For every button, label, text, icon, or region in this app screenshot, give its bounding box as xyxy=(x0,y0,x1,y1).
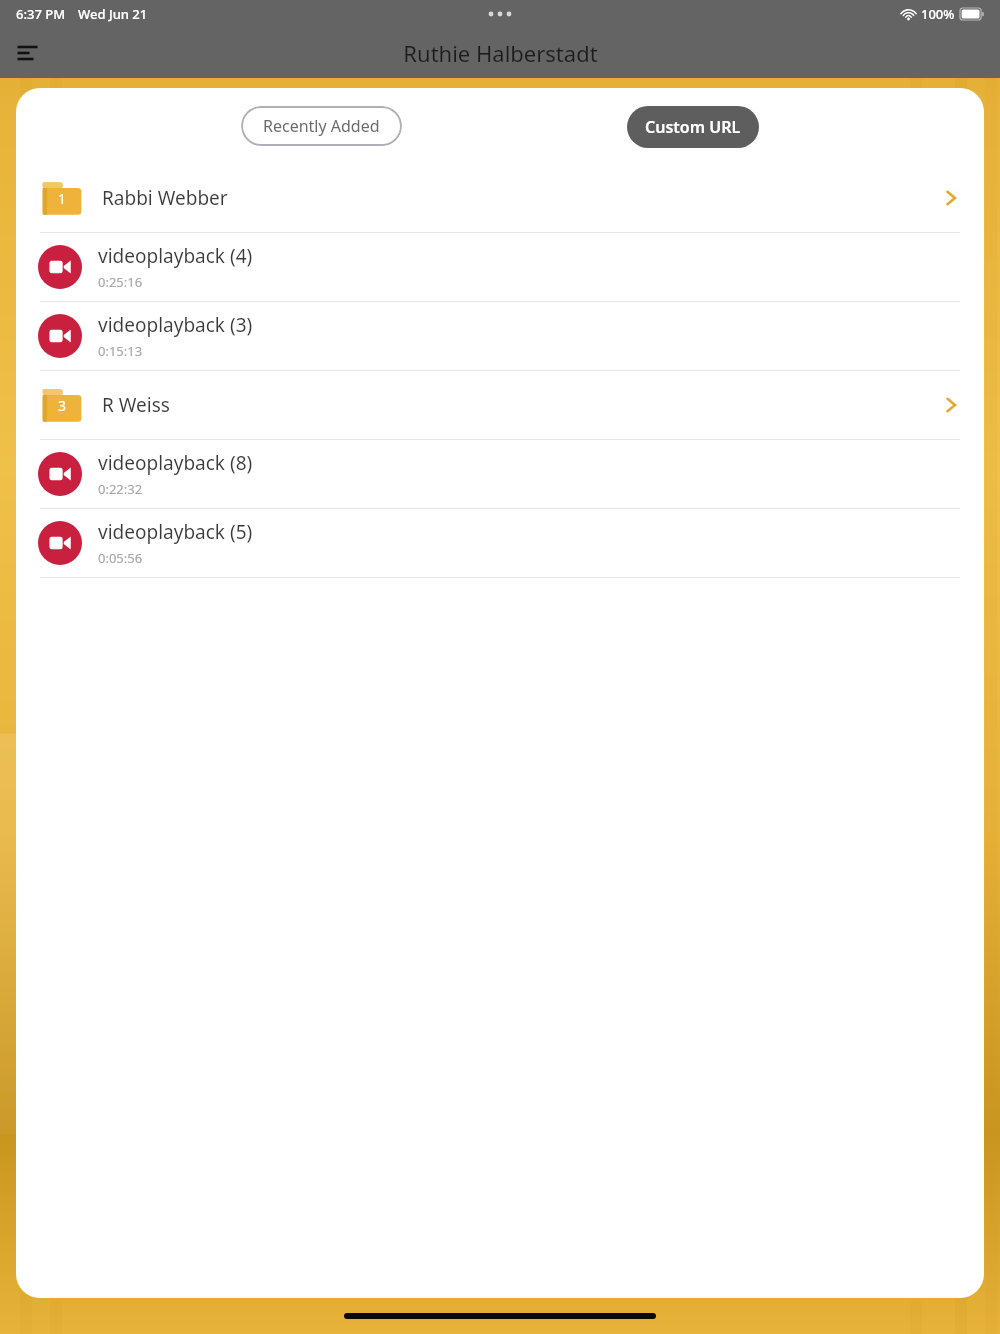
staticText: Custom URL xyxy=(645,116,741,138)
staticText: videoplayback (4) xyxy=(98,243,253,269)
staticText: videoplayback (8) xyxy=(98,450,253,476)
button[interactable]: videoplayback (8) xyxy=(16,440,984,508)
staticText: 1 xyxy=(58,189,67,208)
staticText: 0:22:32 xyxy=(98,480,143,498)
staticText: videoplayback (5) xyxy=(98,519,253,545)
staticText: Ruthie Halberstadt xyxy=(403,38,598,68)
button[interactable]: Recently Added xyxy=(241,106,402,146)
button[interactable]: 3 xyxy=(16,371,984,439)
staticText: 100% xyxy=(921,5,955,23)
button[interactable]: videoplayback (3) xyxy=(16,302,984,370)
staticText: 0:05:56 xyxy=(98,549,143,567)
staticText: Wed Jun 21 xyxy=(78,5,148,23)
button[interactable]: 1 xyxy=(16,164,984,232)
staticText: 0:15:13 xyxy=(98,342,143,360)
staticText: videoplayback (3) xyxy=(98,312,253,338)
staticText: Rabbi Webber xyxy=(102,185,228,211)
staticText: 3 xyxy=(58,396,67,415)
staticText: Recently Added xyxy=(263,115,380,137)
button[interactable]: videoplayback (5) xyxy=(16,509,984,577)
button[interactable]: Custom URL xyxy=(627,106,759,148)
staticText: 0:25:16 xyxy=(98,273,143,291)
button[interactable]: Menu xyxy=(8,33,48,73)
staticText: 6:37 PM xyxy=(16,5,66,23)
staticText: R Weiss xyxy=(102,392,170,418)
button[interactable]: videoplayback (4) xyxy=(16,233,984,301)
